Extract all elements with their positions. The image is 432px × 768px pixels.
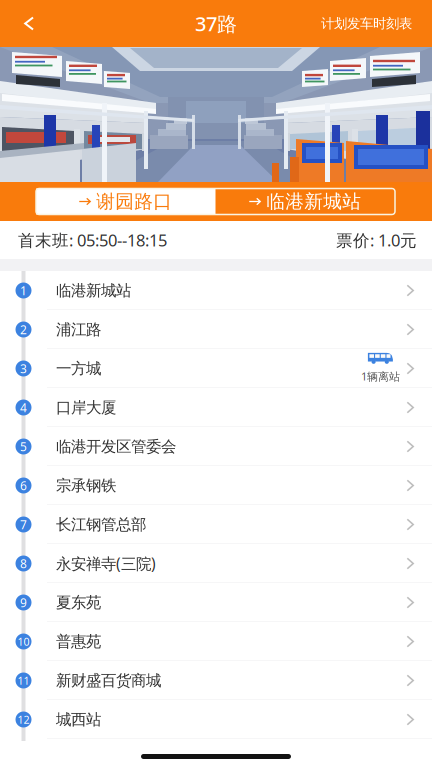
staticText: 临港新城站 — [266, 190, 361, 213]
staticText: 9 — [20, 594, 27, 611]
button[interactable]: 11 — [0, 661, 432, 700]
staticText: 6 — [20, 477, 27, 494]
staticText: 谢园路口 — [96, 190, 172, 213]
button[interactable]: 4 — [0, 388, 432, 427]
button[interactable]: 6 — [0, 466, 432, 505]
staticText: 37路 — [195, 10, 237, 37]
staticText: 3 — [20, 360, 27, 377]
staticText: 10 — [17, 634, 29, 649]
staticText: 计划发车时刻表 — [321, 15, 412, 32]
staticText: 临港新城站 — [56, 281, 131, 300]
button[interactable]: 临港新城站 — [215, 188, 395, 214]
button[interactable]: 8 — [0, 544, 432, 583]
staticText: 首末班: 05:50--18:15 — [18, 229, 167, 251]
button[interactable]: 2 — [0, 310, 432, 349]
staticText: 宗承钢铁 — [56, 476, 116, 495]
staticText: 一方城 — [56, 359, 101, 378]
staticText: 夏东苑 — [56, 593, 101, 612]
staticText: 长江钢管总部 — [56, 515, 146, 534]
staticText: 临港开发区管委会 — [56, 437, 176, 456]
staticText: 12 — [17, 712, 29, 727]
button[interactable]: 1 — [0, 271, 432, 310]
button[interactable]: 谢园路口 — [36, 188, 215, 214]
staticText: 口岸大厦 — [56, 398, 116, 417]
staticText: 1辆离站 — [361, 369, 400, 384]
staticText: 7 — [20, 516, 27, 533]
staticText: 2 — [20, 321, 27, 338]
staticText: 票价: 1.0元 — [336, 229, 417, 251]
staticText: 8 — [20, 555, 27, 572]
button[interactable]: 5 — [0, 427, 432, 466]
button[interactable]: 7 — [0, 505, 432, 544]
staticText: 永安禅寺(三院) — [56, 553, 156, 574]
button[interactable]: 10 — [0, 622, 432, 661]
staticText: 普惠苑 — [56, 632, 101, 651]
button[interactable]: Back — [0, 0, 50, 47]
button[interactable]: 12 — [0, 700, 432, 739]
staticText: 11 — [17, 673, 29, 688]
button[interactable]: 13 — [0, 739, 432, 768]
staticText: 5 — [20, 438, 27, 455]
staticText: 1 — [20, 282, 27, 299]
staticText: 城西站 — [56, 710, 101, 729]
staticText: 浦江路 — [56, 320, 101, 339]
staticText: 新财盛百货商城 — [56, 671, 161, 690]
staticText: 4 — [20, 399, 27, 416]
button[interactable]: 计划发车时刻表 — [321, 0, 432, 47]
button[interactable]: 9 — [0, 583, 432, 622]
button[interactable]: 3 — [0, 349, 432, 388]
